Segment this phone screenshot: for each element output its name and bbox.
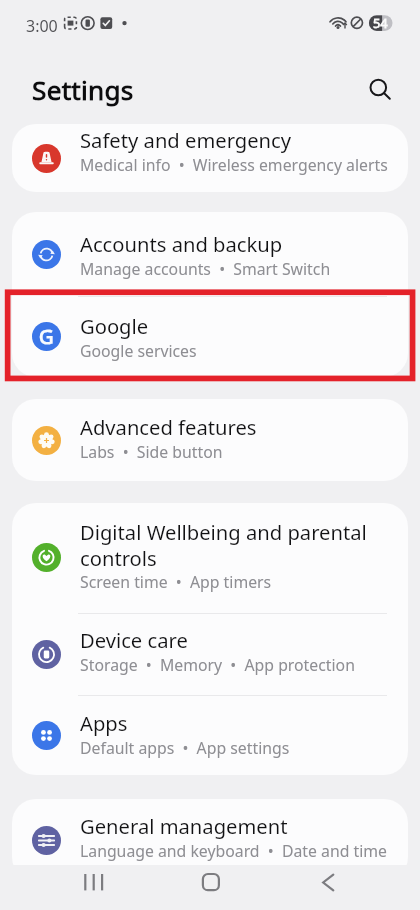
staticText: Advanced features: [80, 413, 257, 441]
staticText: Google services: [80, 340, 197, 362]
staticText: 54: [373, 14, 388, 31]
staticText: Language and keyboard • Date and time: [80, 840, 387, 862]
staticText: Google: [80, 312, 149, 340]
staticText: Labs • Side button: [80, 441, 223, 463]
staticText: Storage • Memory • App protection: [80, 654, 355, 676]
staticText: Apps: [80, 709, 128, 737]
staticText: Device care: [80, 626, 188, 654]
staticText: G: [39, 323, 54, 350]
staticText: General management: [80, 812, 288, 840]
button[interactable]: G: [12, 296, 408, 377]
staticText: Settings: [32, 72, 134, 108]
button[interactable]: Digital Wellbeing and parental controls: [12, 503, 408, 613]
button[interactable]: Advanced features: [12, 399, 408, 481]
staticText: Medical info • Wireless emergency alerts: [80, 154, 388, 176]
staticText: Digital Wellbeing and parental controls: [80, 518, 414, 571]
staticText: Screen time • App timers: [80, 571, 272, 593]
staticText: 3:00: [26, 15, 58, 37]
staticText: Accounts and backup: [80, 230, 283, 258]
button[interactable]: Search: [358, 67, 400, 109]
button[interactable]: Back: [300, 865, 348, 909]
staticText: Default apps • App settings: [80, 737, 290, 759]
staticText: Manage accounts • Smart Switch: [80, 258, 331, 280]
button[interactable]: Apps: [12, 695, 408, 775]
button[interactable]: General management: [12, 799, 408, 881]
button[interactable]: Recent apps: [70, 865, 118, 909]
button[interactable]: Accounts and backup: [12, 212, 408, 296]
button[interactable]: Safety and emergency: [12, 124, 408, 192]
button[interactable]: Device care: [12, 613, 408, 695]
button[interactable]: Home: [187, 865, 235, 909]
staticText: Safety and emergency: [80, 126, 292, 154]
